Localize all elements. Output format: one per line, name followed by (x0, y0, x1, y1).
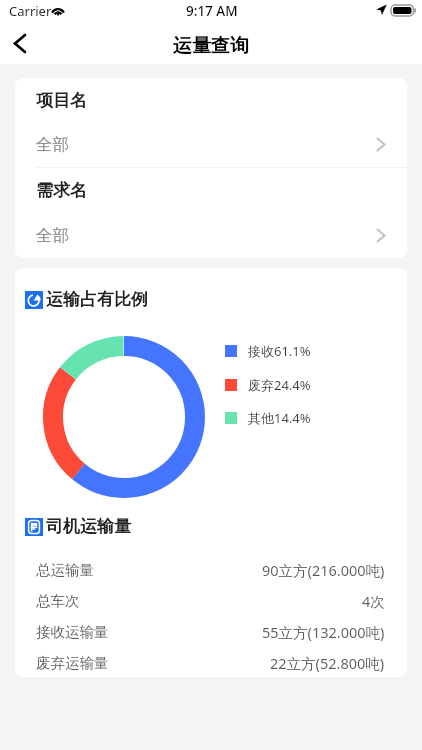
staticText: 项目名 (36, 90, 87, 111)
staticText: 55立方(132.000吨) (262, 622, 385, 642)
staticText: 司机运输量 (46, 516, 131, 537)
staticText: 废弃运输量 (36, 654, 109, 672)
staticText: 需求名 (36, 180, 87, 201)
button[interactable]: Back (0, 23, 41, 63)
staticText: 运输占有比例 (46, 289, 148, 310)
staticText: 接收运输量 (36, 623, 109, 641)
staticText: 4次 (362, 591, 385, 611)
staticText: 全部 (36, 134, 69, 155)
staticText: 总车次 (36, 592, 80, 610)
staticText: 运量查询 (173, 34, 249, 58)
staticText: 22立方(52.800吨) (270, 653, 385, 673)
button[interactable]: 全部 (15, 122, 407, 168)
staticText: 9:17 AM (186, 2, 238, 20)
staticText: Carrier (9, 2, 52, 20)
staticText: 全部 (36, 225, 69, 246)
staticText: 其他14.4% (248, 409, 311, 427)
staticText: 废弃24.4% (248, 376, 311, 394)
staticText: 90立方(216.000吨) (262, 560, 385, 580)
staticText: 总运输量 (36, 561, 94, 579)
staticText: 接收61.1% (248, 342, 311, 360)
button[interactable]: 全部 (15, 212, 407, 258)
